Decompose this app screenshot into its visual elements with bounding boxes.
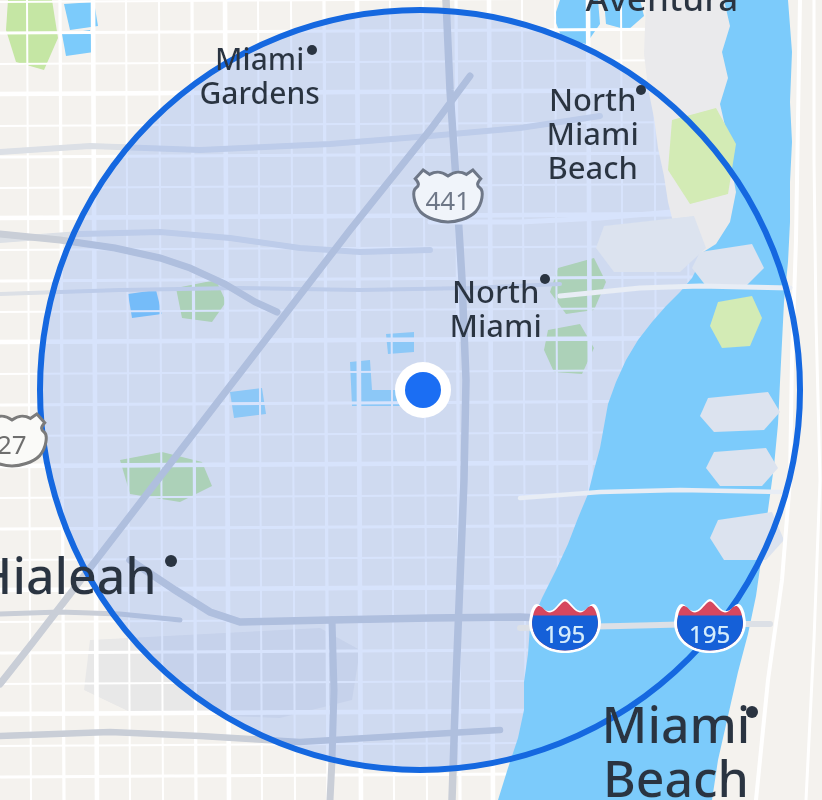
button[interactable]: Map with geofence radius	[0, 0, 822, 800]
